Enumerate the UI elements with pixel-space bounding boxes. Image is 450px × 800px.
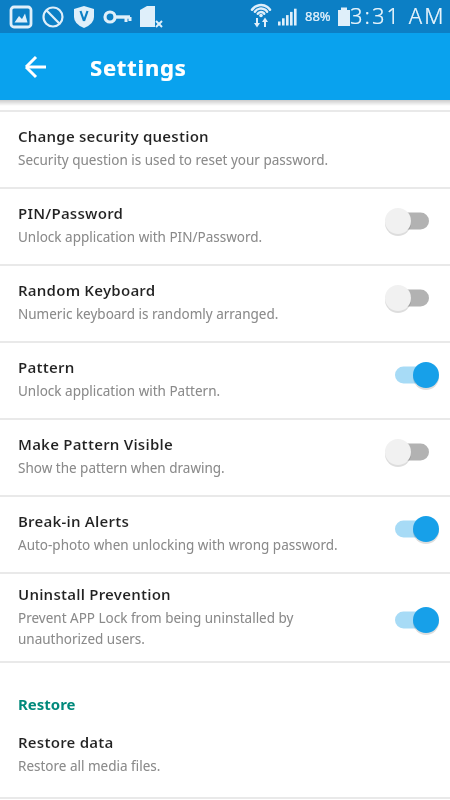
staticText: Numeric keyboard is randomly arranged. [18, 305, 279, 323]
button[interactable] [386, 205, 438, 237]
staticText: PIN/Password [18, 203, 124, 223]
button[interactable]: Pattern [0, 343, 450, 418]
button[interactable]: PIN/Password [0, 189, 450, 264]
staticText: Unlock application with Pattern. [18, 382, 221, 400]
staticText: Restore data [18, 732, 114, 752]
staticText: Show the pattern when drawing. [18, 459, 225, 477]
staticText: 88% [305, 7, 331, 25]
button[interactable] [386, 513, 438, 545]
button[interactable]: Random Keyboard [0, 266, 450, 341]
staticText: Pattern [18, 357, 75, 377]
staticText: Restore [18, 694, 76, 714]
button[interactable]: Uninstall Prevention [0, 574, 450, 661]
staticText: Restore all media files. [18, 757, 161, 775]
staticText: Change security question [18, 126, 209, 146]
button[interactable] [26, 57, 46, 77]
button[interactable]: Restore data [0, 714, 450, 797]
button[interactable] [386, 359, 438, 391]
staticText: Break-in Alerts [18, 511, 130, 531]
staticText: Random Keyboard [18, 280, 156, 300]
button[interactable]: Change security question [0, 112, 450, 187]
button[interactable]: Make Pattern Visible [0, 420, 450, 495]
staticText: Auto-photo when unlocking with wrong pas… [18, 536, 338, 554]
staticText: Unlock application with PIN/Password. [18, 228, 263, 246]
button[interactable]: Break-in Alerts [0, 497, 450, 572]
staticText: Make Pattern Visible [18, 434, 173, 454]
button[interactable] [386, 282, 438, 314]
staticText: Prevent APP Lock from being uninstalled … [18, 609, 294, 648]
staticText: Security question is used to reset your … [18, 151, 329, 169]
staticText: Settings [90, 52, 187, 82]
button[interactable] [386, 604, 438, 636]
staticText: 3:31 AM [350, 0, 446, 30]
button[interactable] [386, 436, 438, 468]
staticText: Uninstall Prevention [18, 584, 171, 604]
